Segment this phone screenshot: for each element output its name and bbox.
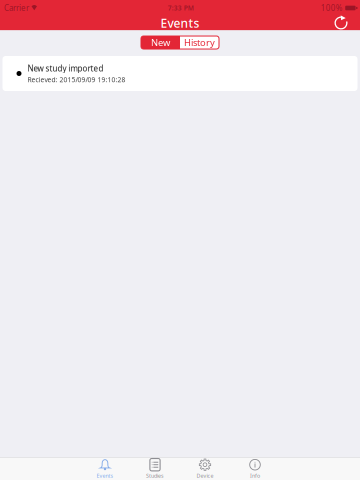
staticText: 7:33 PM [168, 4, 194, 12]
staticText: Recieved: 2015/09/09 19:10:28 [27, 75, 125, 84]
button[interactable]: History [180, 36, 219, 49]
button[interactable]: Info [230, 458, 280, 480]
button[interactable]: Events [80, 458, 130, 480]
staticText: Studies [146, 472, 164, 479]
staticText: Info [250, 472, 260, 479]
button[interactable]: Studies [130, 458, 180, 480]
staticText: New study imported [27, 63, 103, 74]
staticText: Carrier [4, 3, 29, 13]
staticText: Events [160, 15, 199, 31]
staticText: 100% [321, 3, 343, 13]
staticText: Device [196, 472, 213, 479]
button[interactable]: Device [180, 458, 230, 480]
button[interactable]: New study imported [2, 56, 357, 91]
staticText: Events [96, 472, 113, 479]
staticText: New [151, 36, 170, 49]
button[interactable]: Refresh [327, 16, 355, 30]
button[interactable]: New [141, 36, 180, 49]
staticText: History [184, 36, 215, 49]
